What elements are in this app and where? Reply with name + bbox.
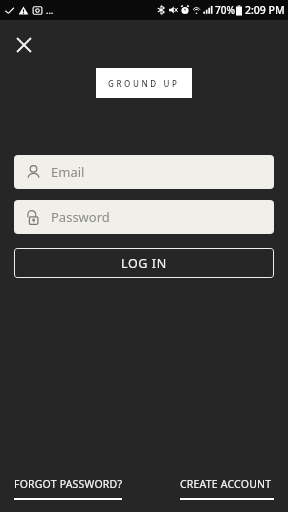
button[interactable]: Password xyxy=(14,200,274,234)
button[interactable]: FORGOT PASSWORD? xyxy=(14,477,123,500)
staticText: LOG IN xyxy=(121,255,167,272)
button[interactable]: CREATE ACCOUNT xyxy=(180,477,274,500)
button[interactable]: LOG IN xyxy=(14,248,274,278)
button[interactable]: Close xyxy=(6,27,42,63)
staticText: 2:09 PM xyxy=(245,3,285,17)
staticText: Email xyxy=(51,163,85,181)
staticText: FORGOT PASSWORD? xyxy=(14,477,123,491)
staticText: ... xyxy=(46,4,54,16)
button[interactable]: Email xyxy=(14,155,274,189)
staticText: CREATE ACCOUNT xyxy=(180,477,272,491)
staticText: 70% xyxy=(215,3,235,17)
staticText: GROUND UP xyxy=(108,78,180,89)
staticText: Password xyxy=(51,208,110,226)
